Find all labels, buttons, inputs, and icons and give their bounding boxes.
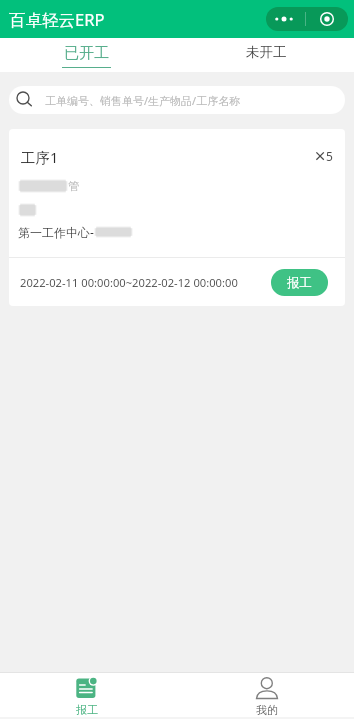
staticText: 报工 <box>287 275 312 291</box>
button[interactable]: 未开工 <box>177 38 354 72</box>
button[interactable]: 工单编号、销售单号/生产物品/工序名称 <box>9 86 345 114</box>
staticText: 第一工作中心- <box>18 224 94 240</box>
button[interactable]: 报工 <box>271 269 328 296</box>
staticText: 报工 <box>76 703 98 717</box>
button[interactable]: 已开工 <box>0 38 177 72</box>
button[interactable]: More options <box>266 7 305 31</box>
button[interactable]: 我的 <box>177 673 354 717</box>
staticText: 工序1 <box>21 147 59 165</box>
staticText: 我的 <box>256 703 278 717</box>
staticText: 5 <box>326 148 333 164</box>
staticText: 2022-02-11 00:00:00~2022-02-12 00:00:00 <box>20 275 238 290</box>
staticText: 已开工 <box>64 44 109 63</box>
staticText: 百卓轻云ERP <box>9 8 105 31</box>
staticText: 管 <box>68 179 79 193</box>
button[interactable]: 报工 <box>0 673 177 717</box>
button[interactable]: 工序1 <box>9 129 345 306</box>
button[interactable]: Close mini program <box>306 7 348 31</box>
staticText: 工单编号、销售单号/生产物品/工序名称 <box>45 93 241 108</box>
staticText: 未开工 <box>246 44 287 61</box>
